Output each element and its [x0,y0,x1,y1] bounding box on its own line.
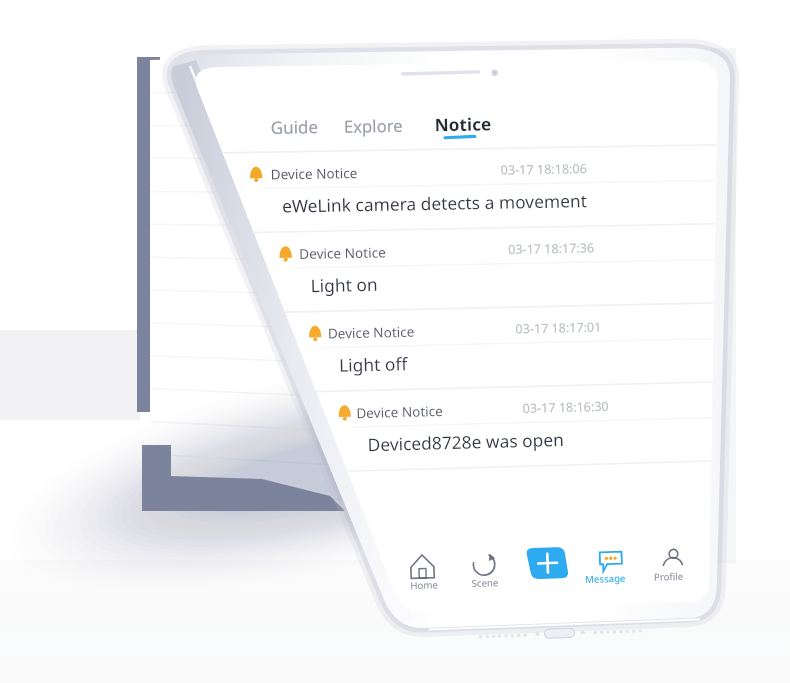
button[interactable]: eWeLink Notice screen phone mockup [0,0,790,683]
